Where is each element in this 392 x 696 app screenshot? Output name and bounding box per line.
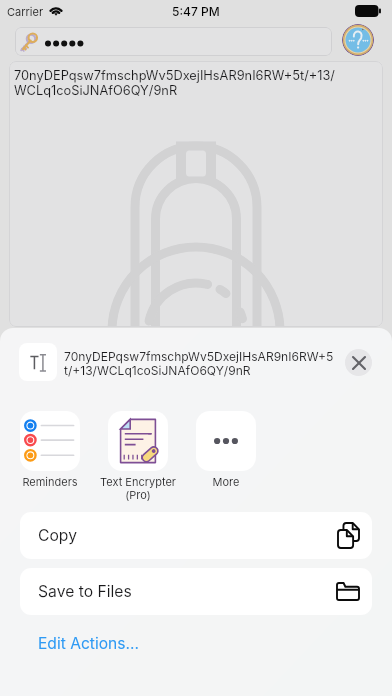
button[interactable]: 70nyDEPqsw7fmschpWv5DxejIHsAR9nI6RW+5 t/… (19, 343, 372, 381)
staticText: Copy (38, 526, 77, 545)
button[interactable]: Text Encrypter (94, 411, 182, 501)
staticText: 70nyDEPqsw7fmschpWv5DxejIHsAR9nI6RW+5t/+… (14, 68, 335, 98)
button[interactable]: Help (342, 24, 374, 56)
button[interactable]: Reminders (6, 411, 94, 488)
button[interactable]: Save to Files (20, 568, 372, 615)
staticText: Carrier (7, 5, 44, 18)
staticText: 70nyDEPqsw7fmschpWv5DxejIHsAR9nI6RW+5 t/… (64, 349, 349, 378)
staticText: Text Encrypter (94, 475, 182, 488)
staticText: Edit Actions... (38, 634, 140, 653)
staticText: Save to Files (38, 582, 132, 601)
button[interactable]: More (182, 411, 270, 488)
staticText: More (182, 475, 270, 488)
staticText: (Pro) (94, 488, 182, 501)
staticText: 5:47 PM (172, 4, 220, 19)
button[interactable]: Remove attachment (345, 349, 372, 376)
button[interactable]: Edit Actions... (30, 628, 132, 647)
button[interactable] (15, 27, 332, 56)
staticText: Reminders (6, 475, 94, 488)
button[interactable]: Copy (20, 512, 372, 559)
